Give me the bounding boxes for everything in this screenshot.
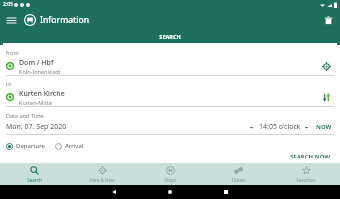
button[interactable]: Kürten Kirche bbox=[6, 88, 318, 106]
staticText: from bbox=[6, 49, 19, 56]
staticText: NOW bbox=[316, 123, 332, 131]
staticText: Favorites bbox=[296, 177, 316, 183]
staticText: Date and Time bbox=[6, 112, 44, 119]
staticText: Information bbox=[40, 14, 90, 26]
button[interactable]: Back bbox=[107, 185, 121, 199]
button[interactable]: Open navigation menu bbox=[4, 13, 18, 27]
staticText: 2:05 bbox=[3, 1, 13, 8]
staticText: Stops bbox=[164, 177, 176, 183]
button[interactable]: Recent apps bbox=[219, 185, 233, 199]
button[interactable]: Favorites bbox=[272, 163, 340, 185]
staticText: SEARCH bbox=[159, 33, 181, 40]
button[interactable]: Use current location bbox=[318, 58, 334, 74]
staticText: Tickets bbox=[231, 177, 246, 183]
button[interactable]: Dom / Hbf bbox=[6, 57, 318, 75]
button[interactable]: Swap origin and destination bbox=[318, 89, 334, 105]
button[interactable]: Mon, 07. Sep 2020 bbox=[6, 120, 254, 134]
button[interactable]: Stops bbox=[136, 163, 204, 185]
staticText: Kürten Kirche bbox=[19, 89, 65, 99]
button[interactable]: 14:05 o'clock bbox=[259, 120, 309, 134]
staticText: Kürten-Mitte bbox=[19, 99, 52, 106]
staticText: Köln-Innenstadt bbox=[19, 68, 61, 75]
button[interactable]: Here & Now bbox=[68, 163, 136, 185]
staticText: Search bbox=[27, 177, 42, 183]
button[interactable]: NOW bbox=[314, 121, 334, 133]
staticText: Mon, 07. Sep 2020 bbox=[6, 122, 67, 132]
button[interactable]: Departure bbox=[6, 141, 45, 151]
button[interactable]: Delete bbox=[321, 13, 335, 27]
staticText: Departure bbox=[16, 142, 45, 150]
staticText: Here & Now bbox=[89, 177, 115, 183]
staticText: 14:05 o'clock bbox=[259, 122, 301, 132]
staticText: to bbox=[6, 80, 12, 87]
button[interactable]: SEARCH NOW bbox=[288, 151, 333, 160]
button[interactable]: Search bbox=[0, 163, 68, 185]
button[interactable]: Arrival bbox=[55, 141, 84, 151]
button[interactable]: Home bbox=[163, 185, 177, 199]
button[interactable]: Tickets bbox=[204, 163, 272, 185]
staticText: Arrival bbox=[65, 142, 84, 150]
button[interactable]: SEARCH bbox=[0, 33, 340, 45]
staticText: SEARCH NOW bbox=[290, 153, 331, 158]
staticText: Dom / Hbf bbox=[19, 58, 54, 68]
